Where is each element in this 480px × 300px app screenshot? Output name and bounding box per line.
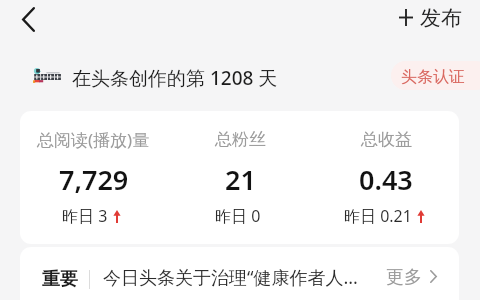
staticText: 昨日 0: [215, 205, 261, 227]
staticText: 在头条创作的第 1208 天: [72, 65, 278, 91]
staticText: 总阅读(播放)量: [37, 128, 150, 151]
button[interactable]: 重要: [20, 247, 459, 300]
staticText: 昨日 3: [62, 205, 108, 227]
staticText: 总粉丝: [215, 129, 266, 150]
staticText: 总收益: [361, 129, 412, 150]
button[interactable]: 头条认证: [391, 61, 480, 90]
staticText: 更多: [386, 266, 422, 289]
staticText: 重要: [42, 268, 78, 291]
staticText: 头条认证: [401, 67, 465, 87]
staticText: 昨日 0.21: [344, 205, 412, 227]
staticText: 0.43: [359, 161, 413, 198]
staticText: 今日头条关于治理“健康作者人...: [103, 265, 358, 290]
staticText: 21: [225, 161, 256, 198]
button[interactable]: 发布: [398, 3, 462, 32]
button[interactable]: Back: [11, 2, 45, 36]
staticText: 发布: [420, 5, 462, 31]
button[interactable]: 总阅读(播放)量: [20, 111, 459, 244]
staticText: 7,729: [59, 161, 129, 198]
